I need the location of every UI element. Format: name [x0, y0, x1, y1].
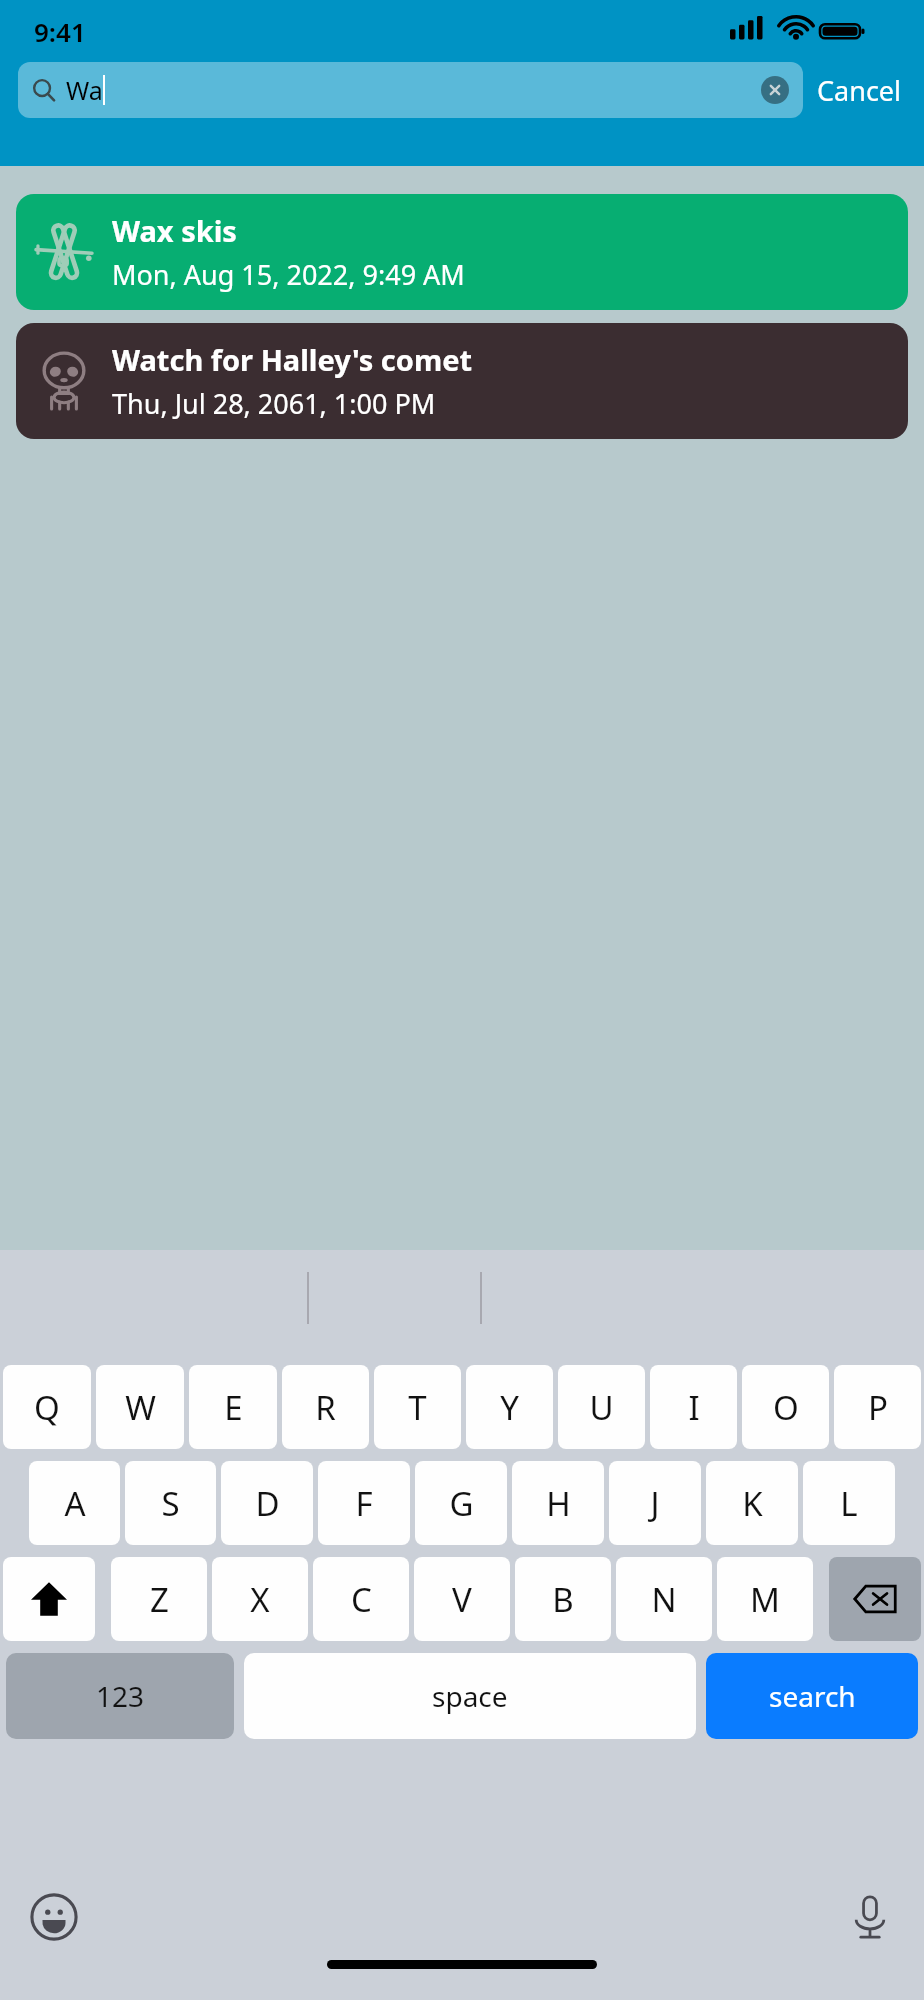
button[interactable]: V: [414, 1557, 510, 1641]
button[interactable]: 123: [6, 1653, 234, 1739]
staticText: O: [773, 1385, 799, 1430]
button[interactable]: Z: [111, 1557, 207, 1641]
button[interactable]: Clear text: [761, 76, 789, 104]
staticText: Cancel: [817, 72, 902, 109]
staticText: Q: [34, 1385, 60, 1430]
button[interactable]: S: [125, 1461, 216, 1545]
staticText: 123: [96, 1677, 145, 1715]
button[interactable]: Shift: [3, 1557, 95, 1641]
staticText: A: [64, 1481, 86, 1526]
button[interactable]: H: [512, 1461, 604, 1545]
button[interactable]: Wax skis: [16, 194, 908, 310]
staticText: J: [650, 1481, 660, 1526]
staticText: I: [688, 1385, 700, 1430]
button[interactable]: K: [706, 1461, 798, 1545]
button[interactable]: O: [742, 1365, 829, 1449]
button[interactable]: U: [558, 1365, 645, 1449]
button[interactable]: B: [515, 1557, 611, 1641]
staticText: Y: [500, 1385, 519, 1430]
button[interactable]: I: [650, 1365, 737, 1449]
staticText: space: [432, 1677, 508, 1715]
button[interactable]: search: [706, 1653, 918, 1739]
staticText: P: [868, 1385, 888, 1430]
staticText: L: [840, 1481, 858, 1526]
staticText: F: [355, 1481, 373, 1526]
button[interactable]: C: [313, 1557, 409, 1641]
staticText: T: [408, 1385, 427, 1430]
button[interactable]: A: [29, 1461, 120, 1545]
staticText: 9:41: [34, 14, 86, 49]
button[interactable]: L: [803, 1461, 895, 1545]
button[interactable]: W: [96, 1365, 184, 1449]
staticText: W: [125, 1385, 156, 1430]
button[interactable]: Watch for Halley's comet: [16, 323, 908, 439]
staticText: B: [552, 1577, 574, 1622]
staticText: H: [546, 1481, 571, 1526]
staticText: search: [769, 1677, 856, 1715]
button[interactable]: Cancel: [803, 72, 906, 109]
button[interactable]: Wa: [18, 62, 803, 118]
staticText: Watch for Halley's comet: [112, 340, 473, 379]
staticText: K: [742, 1481, 763, 1526]
staticText: X: [250, 1577, 270, 1622]
staticText: D: [255, 1481, 280, 1526]
button[interactable]: space: [244, 1653, 696, 1739]
staticText: M: [750, 1577, 780, 1622]
button[interactable]: Backspace: [829, 1557, 921, 1641]
button[interactable]: P: [834, 1365, 921, 1449]
button[interactable]: Y: [466, 1365, 553, 1449]
button[interactable]: N: [616, 1557, 712, 1641]
button[interactable]: Emoji: [28, 1891, 80, 1943]
staticText: Mon, Aug 15, 2022, 9:49 AM: [112, 256, 465, 293]
staticText: Wax skis: [112, 211, 237, 250]
button[interactable]: E: [189, 1365, 277, 1449]
staticText: S: [161, 1481, 180, 1526]
button[interactable]: T: [374, 1365, 461, 1449]
staticText: V: [452, 1577, 472, 1622]
staticText: U: [589, 1385, 614, 1430]
button[interactable]: G: [415, 1461, 507, 1545]
staticText: Thu, Jul 28, 2061, 1:00 PM: [112, 385, 436, 422]
button[interactable]: X: [212, 1557, 308, 1641]
staticText: C: [351, 1577, 372, 1622]
staticText: N: [651, 1577, 677, 1622]
staticText: R: [315, 1385, 336, 1430]
button[interactable]: M: [717, 1557, 813, 1641]
staticText: E: [224, 1385, 243, 1430]
button[interactable]: D: [221, 1461, 313, 1545]
button[interactable]: F: [318, 1461, 410, 1545]
staticText: Z: [150, 1577, 169, 1622]
staticText: Wa: [66, 73, 103, 107]
button[interactable]: Q: [3, 1365, 91, 1449]
staticText: G: [449, 1481, 474, 1526]
button[interactable]: J: [609, 1461, 701, 1545]
button[interactable]: R: [282, 1365, 369, 1449]
button[interactable]: Dictate: [844, 1891, 896, 1943]
